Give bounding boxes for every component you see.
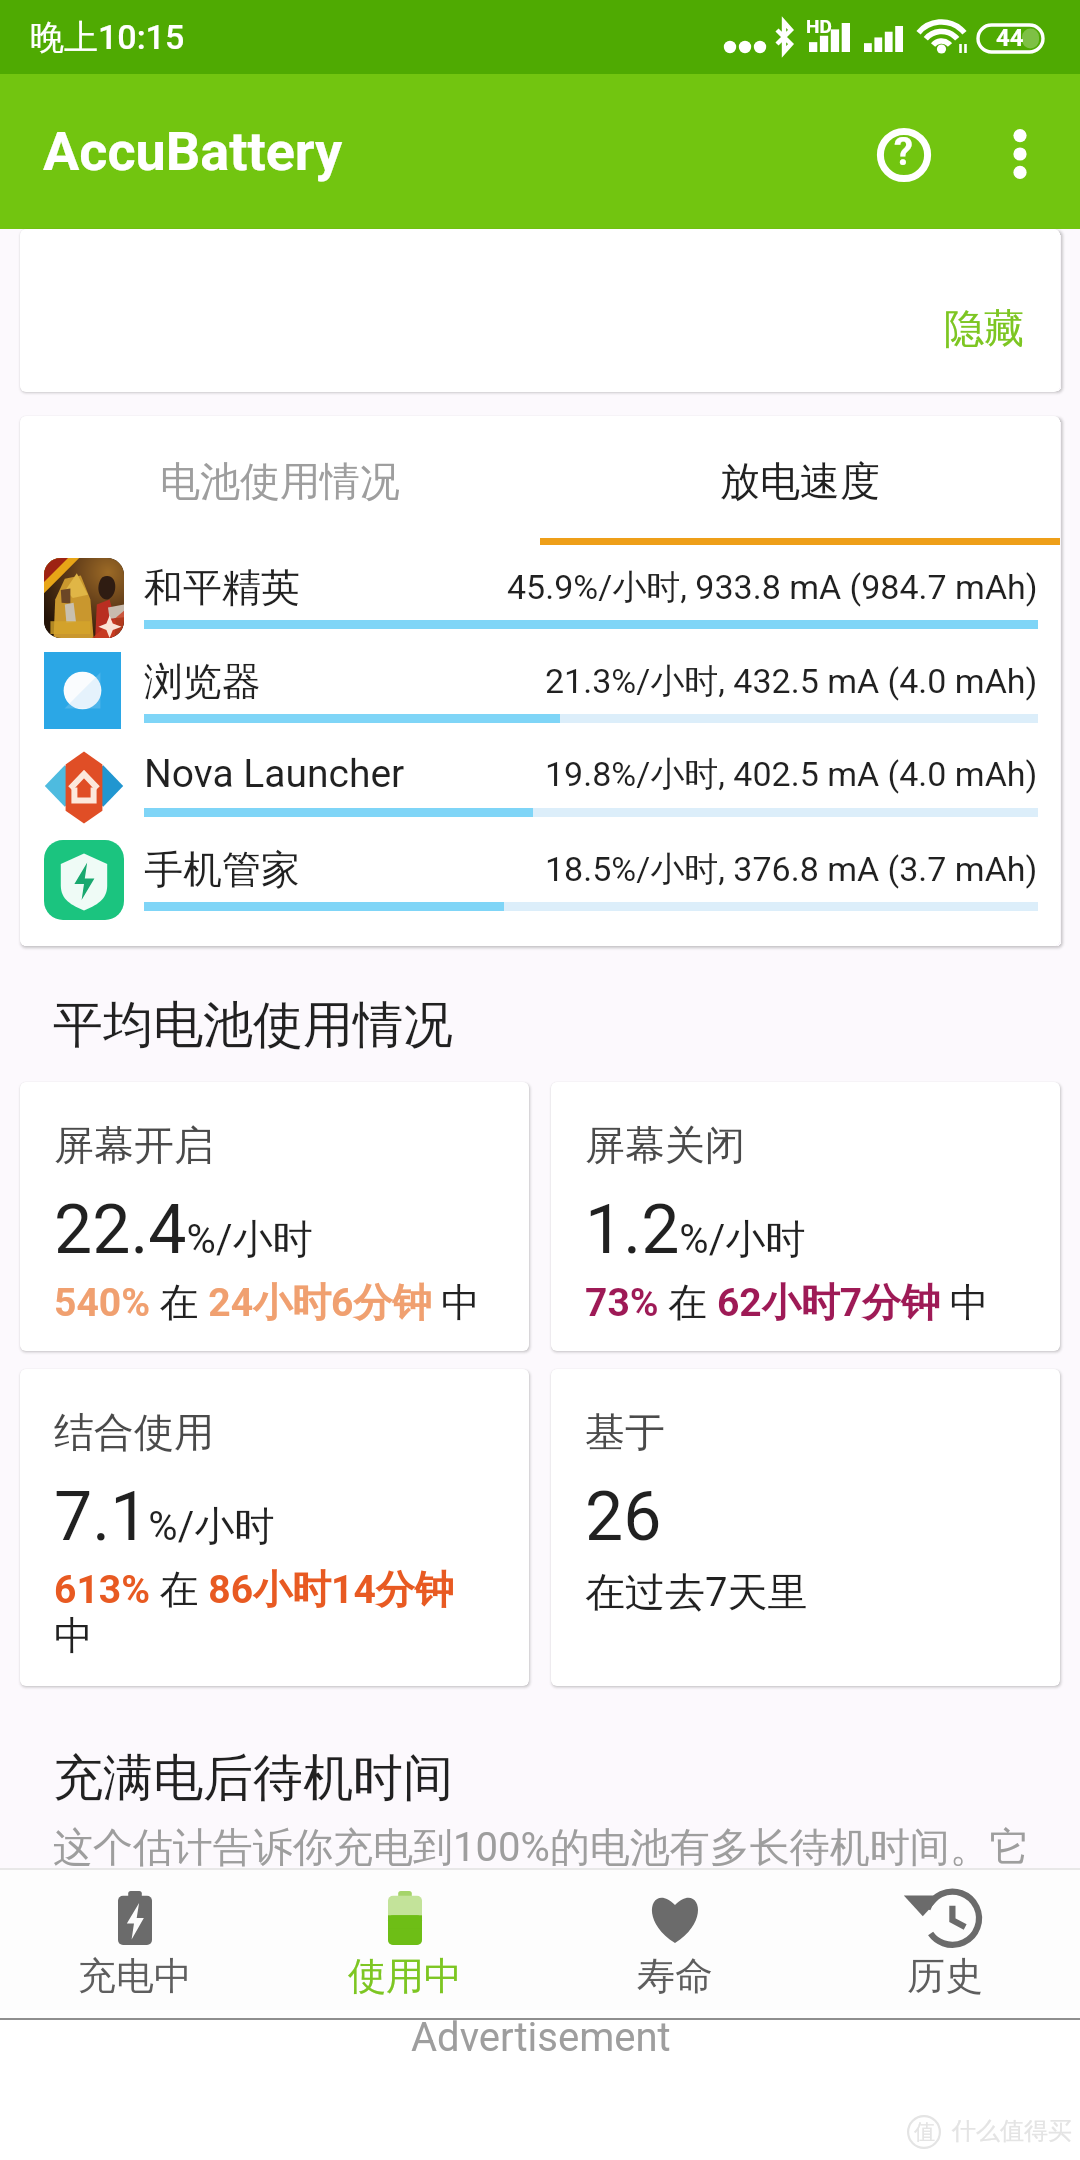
button[interactable]: 屏幕开启 [20,1082,529,1351]
staticText: 放电速度 [720,456,880,506]
staticText: 44 [996,24,1024,52]
button[interactable]: More options [965,99,1075,209]
staticText: 手机管家 [144,845,300,894]
button[interactable]: 电池使用情况 [20,416,540,545]
staticText: Nova Launcher [144,751,405,797]
staticText: 22.4%/小时 [54,1190,313,1270]
button[interactable]: 结合使用 [20,1369,529,1686]
staticText: 这个估计告诉你充电到100%的电池有多长待机时间。它 [53,1822,1030,1872]
staticText: Advertisement [411,2014,671,2061]
staticText: 540% 在 24小时6分钟 中 [54,1278,481,1327]
staticText: 73% 在 62小时7分钟 中 [585,1278,989,1327]
staticText: 充电中 [78,1952,192,2000]
button[interactable]: 屏幕关闭 [551,1082,1060,1351]
staticText: 值 [914,2119,935,2145]
staticText: 和平精英 [144,563,300,612]
staticText: 屏幕关闭 [585,1120,745,1170]
staticText: 平均电池使用情况 [53,994,453,1057]
staticText: 613% 在 86小时14分钟 中 [54,1565,457,1661]
button[interactable]: 手机管家 [20,827,1060,921]
staticText: 晚上10:15 [30,16,185,59]
staticText: 历史 [907,1952,983,2000]
button[interactable]: 和平精英 [20,545,1060,639]
button[interactable]: 历史 [810,1870,1080,2018]
button[interactable]: Help [835,86,972,223]
staticText: 18.5%/小时, 376.8 mA (3.7 mAh) [545,848,1038,891]
button[interactable]: 浏览器 [20,639,1060,733]
staticText: 充满电后待机时间 [53,1747,453,1810]
button[interactable]: 寿命 [540,1870,810,2018]
button[interactable]: Nova Launcher [20,733,1060,827]
staticText: 结合使用 [54,1407,214,1457]
staticText: HD [806,15,832,37]
staticText: AccuBattery [43,120,343,183]
staticText: 什么值得买 [952,2116,1072,2146]
staticText: 基于 [585,1407,665,1457]
staticText: 19.8%/小时, 402.5 mA (4.0 mAh) [545,753,1038,796]
staticText: ? [894,130,913,175]
staticText: 26 [585,1477,662,1557]
staticText: 45.9%/小时, 933.8 mA (984.7 mAh) [507,566,1038,609]
staticText: 浏览器 [144,657,261,706]
button[interactable]: 放电速度 [540,416,1060,545]
staticText: 屏幕开启 [54,1120,214,1170]
staticText: 在过去7天里 [585,1567,808,1617]
button[interactable]: 使用中 [270,1870,540,2018]
staticText: 电池使用情况 [160,456,400,506]
staticText: 7.1%/小时 [54,1477,275,1557]
staticText: 寿命 [637,1952,713,2000]
staticText: 隐藏 [944,303,1024,353]
staticText: 21.3%/小时, 432.5 mA (4.0 mAh) [545,660,1038,703]
button[interactable]: 充电中 [0,1870,270,2018]
staticText: 使用中 [348,1952,462,2000]
button[interactable]: 基于 [551,1369,1060,1686]
staticText: 1.2%/小时 [585,1190,806,1270]
button[interactable]: 隐藏 [944,303,1024,353]
